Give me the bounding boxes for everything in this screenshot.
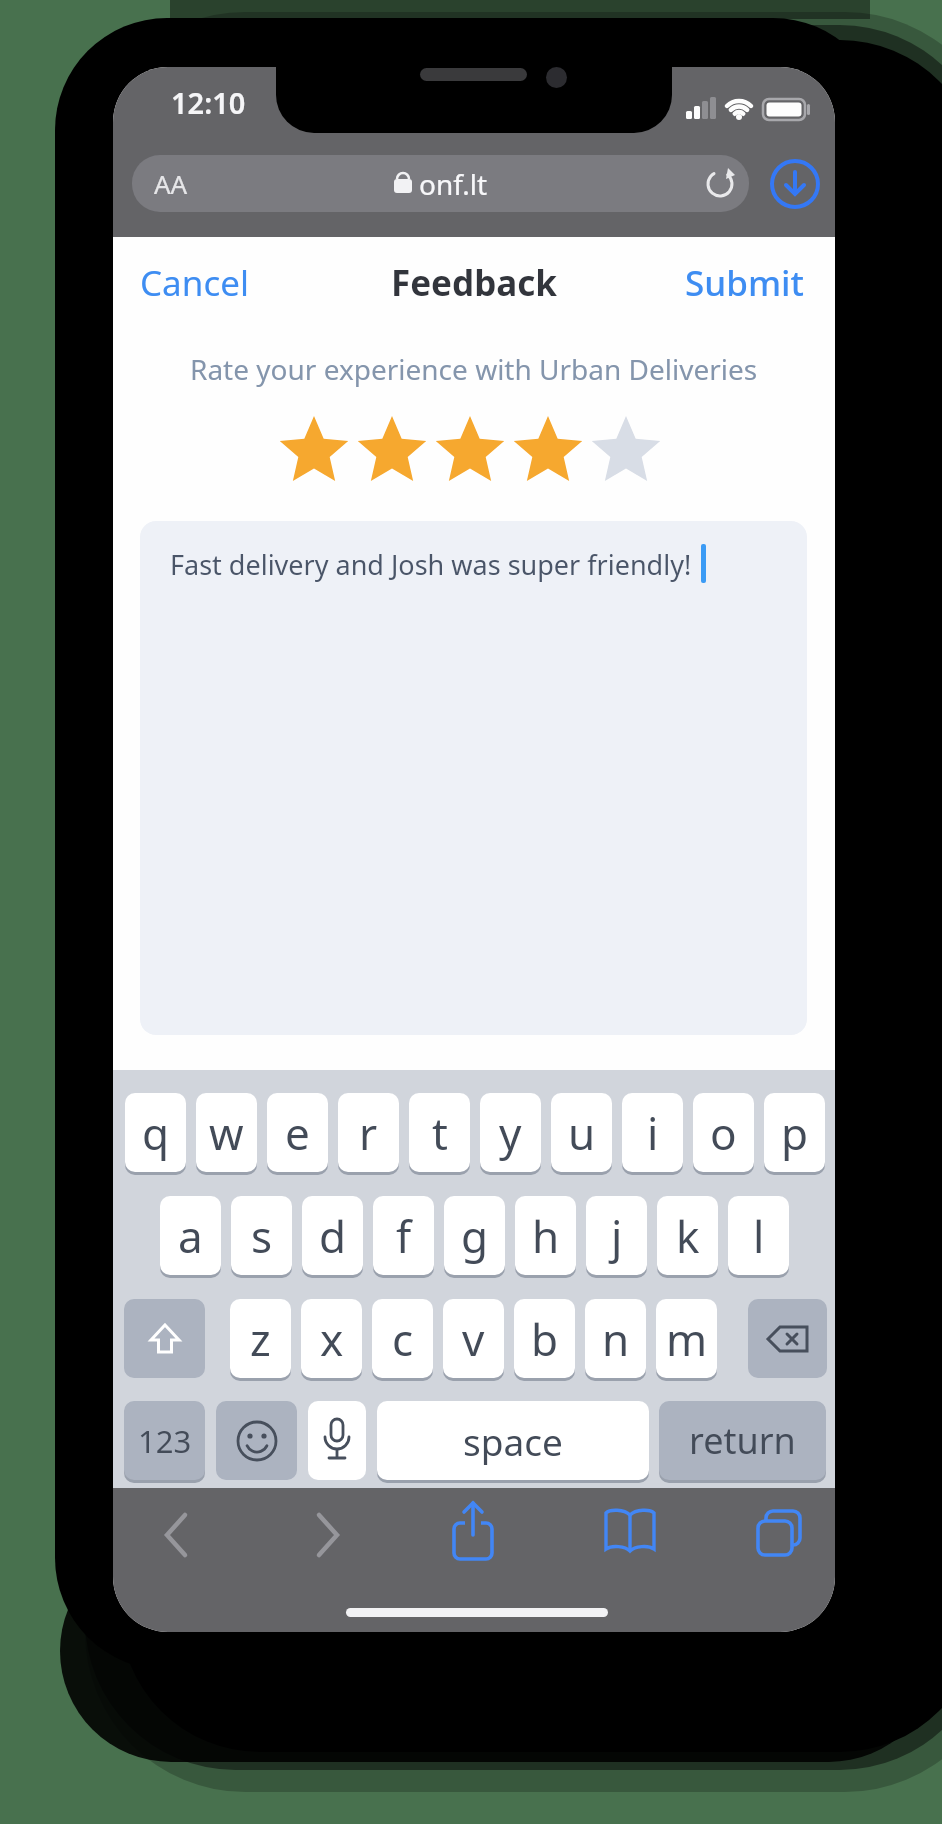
button[interactable]: t — [409, 1093, 470, 1172]
button[interactable] — [769, 158, 821, 210]
button[interactable]: m — [656, 1299, 717, 1378]
staticText: 123 — [138, 1420, 192, 1462]
button[interactable] — [149, 1497, 205, 1573]
button[interactable] — [140, 521, 807, 1035]
button[interactable]: f — [373, 1196, 434, 1275]
staticText: w — [209, 1103, 244, 1163]
button[interactable]: a — [160, 1196, 221, 1275]
staticText: x — [320, 1309, 344, 1369]
button[interactable]: j — [586, 1196, 647, 1275]
staticText: 12:10 — [171, 83, 246, 119]
button[interactable]: n — [585, 1299, 646, 1378]
staticText: h — [532, 1206, 560, 1266]
staticText: Submit — [685, 259, 804, 301]
staticText: AA — [154, 166, 188, 201]
button[interactable]: i — [622, 1093, 683, 1172]
button[interactable]: Cancel — [140, 259, 249, 301]
button[interactable]: w — [196, 1093, 257, 1172]
staticText: return — [689, 1416, 796, 1465]
staticText: z — [250, 1309, 271, 1369]
staticText: i — [647, 1103, 659, 1163]
staticText: v — [462, 1309, 485, 1369]
staticText: e — [285, 1103, 310, 1163]
button[interactable]: r — [338, 1093, 399, 1172]
button[interactable]: u — [551, 1093, 612, 1172]
button[interactable]: x — [301, 1299, 362, 1378]
button[interactable]: v — [443, 1299, 504, 1378]
staticText: Feedback — [391, 259, 557, 301]
staticText: a — [178, 1206, 203, 1266]
staticText: n — [602, 1309, 630, 1369]
button[interactable] — [443, 1501, 503, 1569]
staticText: p — [781, 1103, 809, 1163]
button[interactable]: e — [267, 1093, 328, 1172]
staticText: y — [499, 1103, 522, 1163]
button[interactable]: AA — [132, 155, 749, 212]
staticText: Fast delivery and Josh was super friendl… — [170, 546, 692, 583]
button[interactable] — [124, 1299, 205, 1378]
staticText: onf.lt — [419, 165, 488, 203]
staticText: g — [461, 1206, 489, 1266]
button[interactable]: s — [231, 1196, 292, 1275]
button[interactable]: o — [693, 1093, 754, 1172]
button[interactable]: space — [377, 1401, 649, 1480]
staticText: r — [359, 1103, 378, 1163]
button[interactable] — [216, 1401, 297, 1480]
staticText: m — [666, 1309, 708, 1369]
button[interactable] — [273, 411, 673, 493]
button[interactable]: q — [125, 1093, 186, 1172]
staticText: q — [142, 1103, 170, 1163]
button[interactable]: b — [514, 1299, 575, 1378]
button[interactable]: k — [657, 1196, 718, 1275]
button[interactable]: l — [728, 1196, 789, 1275]
staticText: o — [710, 1103, 737, 1163]
button[interactable]: p — [764, 1093, 825, 1172]
staticText: c — [392, 1309, 414, 1369]
staticText: b — [531, 1309, 559, 1369]
staticText: f — [396, 1206, 412, 1266]
button[interactable]: return — [659, 1401, 826, 1480]
button[interactable]: y — [480, 1093, 541, 1172]
staticText: s — [251, 1206, 273, 1266]
button[interactable]: Submit — [685, 259, 835, 301]
button[interactable] — [748, 1299, 827, 1378]
button[interactable] — [308, 1401, 366, 1480]
button[interactable] — [299, 1497, 355, 1573]
button[interactable] — [750, 1505, 810, 1565]
staticText: Cancel — [140, 259, 249, 301]
button[interactable]: z — [230, 1299, 291, 1378]
button[interactable]: c — [372, 1299, 433, 1378]
staticText: space — [463, 1416, 563, 1466]
staticText: j — [611, 1206, 623, 1266]
staticText: d — [319, 1206, 347, 1266]
staticText: l — [753, 1206, 765, 1266]
button[interactable]: d — [302, 1196, 363, 1275]
button[interactable]: h — [515, 1196, 576, 1275]
button[interactable] — [704, 168, 736, 200]
staticText: Rate your experience with Urban Deliveri… — [190, 350, 758, 388]
button[interactable] — [600, 1505, 660, 1565]
button[interactable]: g — [444, 1196, 505, 1275]
staticText: k — [676, 1206, 700, 1266]
button[interactable]: 123 — [124, 1401, 205, 1480]
staticText: t — [432, 1103, 448, 1163]
staticText: u — [568, 1103, 596, 1163]
